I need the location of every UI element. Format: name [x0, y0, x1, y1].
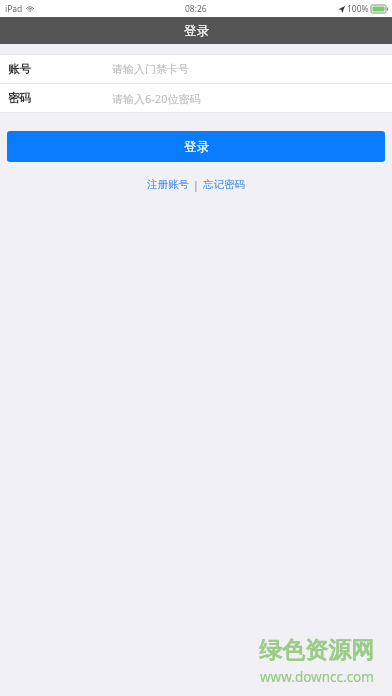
staticText: 请输入门禁卡号 — [112, 62, 189, 76]
staticText: 绿色资源网 — [259, 636, 374, 665]
staticText: 登录 — [184, 23, 209, 39]
button[interactable]: 登录 — [7, 131, 385, 162]
staticText: www.downcc.com — [260, 668, 374, 686]
staticText: | — [193, 178, 199, 192]
staticText: 密码 — [8, 91, 31, 105]
staticText: 08:26 — [185, 3, 207, 15]
staticText: 登录 — [184, 139, 209, 155]
button[interactable]: 账号 — [0, 55, 392, 83]
button[interactable]: 忘记密码 — [201, 177, 247, 192]
staticText: 账号 — [8, 62, 31, 76]
staticText: 注册账号 — [147, 178, 189, 191]
staticText: 100% — [347, 3, 369, 15]
staticText: 忘记密码 — [203, 178, 245, 191]
staticText: 请输入6-20位密码 — [112, 91, 201, 106]
button[interactable]: 注册账号 — [145, 177, 191, 192]
staticText: iPad — [5, 3, 23, 15]
button[interactable]: 密码 — [0, 84, 392, 112]
